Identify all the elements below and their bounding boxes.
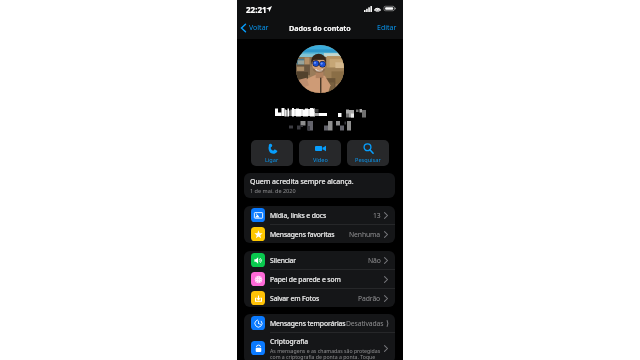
staticText: Desativadas (346, 319, 384, 328)
button[interactable]: Pesquisar (347, 140, 389, 166)
staticText: 22:21 (246, 4, 267, 15)
button[interactable]: Salvar em Fotos (244, 289, 395, 307)
staticText: Silenciar (270, 256, 297, 265)
staticText: 1 de mai. de 2020 (250, 187, 296, 194)
staticText: Vídeo (313, 156, 328, 164)
button[interactable]: Ligar (251, 140, 293, 166)
staticText: Mídia, links e docs (270, 211, 327, 220)
staticText: Voltar (249, 23, 269, 33)
staticText: Mensagens favoritas (270, 230, 335, 239)
button[interactable]: Silenciar (244, 251, 395, 269)
button[interactable]: Foto do perfil (296, 45, 344, 93)
staticText: Criptografia (270, 337, 309, 346)
button[interactable]: Voltar (237, 23, 274, 33)
staticText: Padrão (358, 294, 381, 303)
button[interactable]: Editar (372, 23, 403, 33)
staticText: As mensagens e as chamadas são protegida… (270, 347, 381, 360)
button[interactable]: Mensagens temporárias (244, 314, 395, 332)
staticText: 13 (373, 211, 381, 220)
button[interactable]: Vídeo (299, 140, 341, 166)
staticText: Editar (377, 23, 397, 33)
staticText: Ligar (265, 156, 279, 164)
staticText: Não (368, 256, 381, 265)
button[interactable]: Mensagens favoritas (244, 225, 395, 243)
button[interactable]: Mídia, links e docs (244, 206, 395, 224)
button[interactable]: Papel de parede e som (244, 270, 395, 288)
staticText: Salvar em Fotos (270, 294, 320, 303)
staticText: Nenhuma (349, 230, 381, 239)
staticText: Quem acredita sempre alcança. (250, 177, 354, 187)
staticText: Pesquisar (355, 156, 381, 164)
button[interactable]: Quem acredita sempre alcança. (244, 173, 395, 198)
button[interactable]: Criptografia (244, 333, 395, 360)
staticText: Dados do contato (289, 23, 351, 33)
staticText: Mensagens temporárias (270, 319, 346, 328)
staticText: Papel de parede e som (270, 275, 341, 284)
